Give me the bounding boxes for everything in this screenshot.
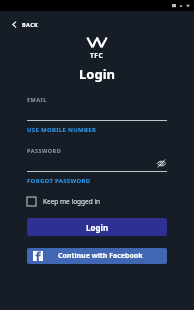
staticText: Login [0,65,194,83]
button[interactable]: Back [7,18,43,31]
button[interactable]: Show password [156,158,167,169]
button[interactable]: FORGOT PASSWORD [27,177,91,185]
staticText: Continue with Facebook [58,251,143,261]
button[interactable]: Continue with Facebook [27,248,167,264]
button[interactable]: USE MOBILE NUMBER [27,126,97,134]
button[interactable]: Login [27,218,167,236]
staticText: BACK [22,21,39,28]
staticText: PASSWORD [27,147,62,154]
staticText: Keep me logged in [43,197,101,206]
other: Back [11,21,18,28]
staticText: EMAIL [27,96,47,103]
staticText: TFC [90,51,104,60]
button[interactable]: Keep me logged in [27,195,101,208]
staticText: Login [86,222,109,233]
